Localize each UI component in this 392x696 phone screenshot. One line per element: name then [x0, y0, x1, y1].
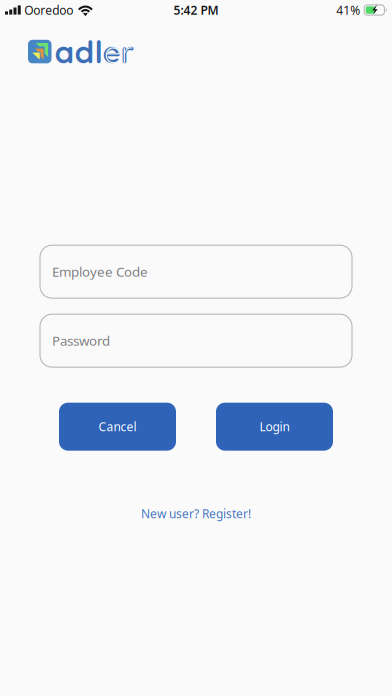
staticText: Password — [52, 332, 110, 349]
button[interactable]: New user? Register! — [141, 506, 251, 522]
staticText: 5:42 PM — [173, 2, 218, 18]
button[interactable]: Login — [216, 403, 333, 451]
staticText: New user? Register! — [141, 506, 251, 522]
staticText: Login — [259, 419, 289, 435]
staticText: Cancel — [98, 419, 136, 435]
button[interactable]: Employee Code — [40, 245, 352, 298]
staticText: er — [104, 32, 133, 71]
button[interactable]: Cancel — [59, 403, 176, 451]
staticText: Ooredoo — [24, 2, 73, 18]
staticText: 41% — [336, 2, 360, 18]
staticText: adl — [54, 32, 102, 71]
staticText: Employee Code — [52, 263, 148, 280]
staticText: er — [102, 32, 134, 71]
button[interactable]: Password — [40, 314, 352, 367]
